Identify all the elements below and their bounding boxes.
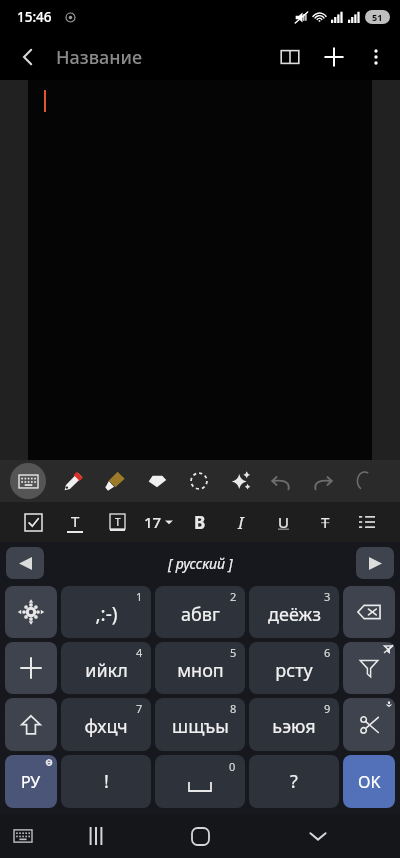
button[interactable]: ийкл: [61, 642, 151, 694]
staticText: 4: [136, 645, 143, 660]
button[interactable]: деёжз: [249, 586, 339, 638]
button[interactable]: Hide keyboard: [298, 816, 338, 856]
button[interactable]: Filter: [343, 642, 395, 694]
staticText: [ русский ]: [168, 554, 233, 573]
staticText: рсту: [275, 658, 313, 683]
staticText: ,:-): [95, 601, 118, 627]
staticText: деёжз: [268, 602, 321, 627]
button[interactable]: Home: [180, 816, 220, 856]
button[interactable]: Redo: [308, 466, 338, 496]
button[interactable]: Next language: [356, 547, 394, 579]
button[interactable]: шщъы: [155, 698, 245, 751]
button[interactable]: Recent apps: [76, 816, 116, 856]
staticText: 1: [136, 589, 143, 604]
staticText: Название: [56, 45, 143, 70]
button[interactable]: Underline: [268, 507, 298, 537]
staticText: B: [194, 511, 206, 534]
staticText: фхцч: [84, 714, 128, 739]
staticText: I: [238, 511, 244, 534]
button[interactable]: Previous language: [6, 547, 44, 579]
staticText: 9: [324, 701, 331, 716]
button[interactable]: фхцч: [61, 698, 151, 751]
staticText: ьэюя: [272, 714, 316, 739]
staticText: U: [278, 512, 289, 532]
staticText: 7: [136, 701, 143, 716]
button[interactable]: View mode: [268, 35, 312, 79]
staticText: 51: [372, 11, 383, 23]
button[interactable]: More options: [356, 37, 396, 77]
button[interactable]: абвг: [155, 586, 245, 638]
button[interactable]: Text background: [102, 507, 132, 537]
staticText: РУ: [21, 771, 41, 793]
button[interactable]: Eraser: [142, 466, 172, 496]
staticText: 3: [324, 589, 331, 604]
button[interactable]: Effects: [226, 466, 256, 496]
staticText: T: [115, 515, 121, 529]
staticText: мноп: [177, 658, 224, 683]
button[interactable]: Shift: [5, 698, 57, 751]
button[interactable]: Pen: [58, 466, 88, 496]
staticText: 15:46: [17, 8, 52, 26]
button[interactable]: Undo: [266, 466, 296, 496]
button[interactable]: More: [348, 468, 374, 494]
staticText: 0: [229, 759, 236, 774]
button[interactable]: Bold: [185, 507, 215, 537]
button[interactable]: Highlighter: [100, 466, 130, 496]
staticText: 17: [144, 512, 162, 532]
button[interactable]: Lasso select: [184, 466, 214, 496]
button[interactable]: 17: [144, 512, 173, 532]
staticText: ?: [290, 769, 298, 794]
button[interactable]: Add: [5, 642, 57, 694]
staticText: 8: [230, 701, 237, 716]
button[interactable]: Space: [155, 755, 245, 808]
staticText: T: [321, 512, 330, 532]
button[interactable]: ьэюя: [249, 698, 339, 751]
button[interactable]: Backspace: [343, 586, 395, 638]
staticText: !: [104, 769, 109, 794]
button[interactable]: мноп: [155, 642, 245, 694]
staticText: T: [71, 511, 80, 531]
button[interactable]: РУ: [5, 755, 57, 808]
button[interactable]: Back: [8, 37, 48, 77]
button[interactable]: Italic: [226, 507, 256, 537]
staticText: шщъы: [172, 714, 229, 739]
button[interactable]: Strikethrough: [310, 507, 340, 537]
staticText: ийкл: [85, 658, 128, 683]
staticText: OK: [358, 771, 381, 793]
button[interactable]: Add: [312, 35, 356, 79]
button[interactable]: Keyboard: [10, 463, 46, 499]
staticText: 5: [230, 645, 237, 660]
button[interactable]: Settings: [5, 586, 57, 638]
button[interactable]: рсту: [249, 642, 339, 694]
staticText: 6: [324, 645, 331, 660]
button[interactable]: Keyboard layout: [14, 827, 32, 845]
staticText: 2: [230, 589, 237, 604]
button[interactable]: !: [61, 755, 151, 808]
button[interactable]: Checklist: [18, 507, 48, 537]
button[interactable]: List: [352, 507, 382, 537]
button[interactable]: ,:-): [61, 586, 151, 638]
button[interactable]: ?: [249, 755, 339, 808]
button[interactable]: Cut: [343, 698, 395, 751]
button[interactable]: Text color: [60, 507, 90, 537]
button[interactable]: OK: [343, 755, 395, 808]
staticText: абвг: [181, 602, 220, 627]
